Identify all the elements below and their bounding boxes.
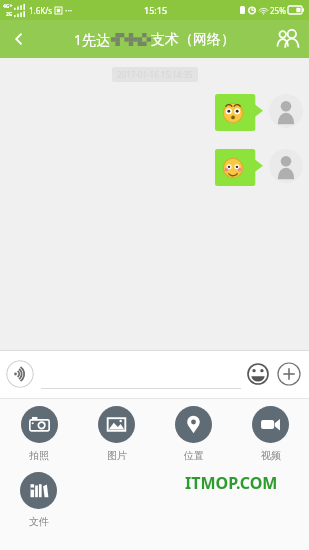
staticText: 视频 <box>261 449 281 462</box>
staticText: 图片 <box>107 449 127 462</box>
staticText: 拍照 <box>29 449 49 462</box>
staticText: 支术（网络） <box>151 31 235 49</box>
button[interactable] <box>215 149 263 186</box>
button[interactable]: More <box>277 362 301 386</box>
staticText: 1.6K/s <box>29 5 53 16</box>
button[interactable]: Back <box>0 20 38 58</box>
staticText: 文件 <box>29 515 49 528</box>
button[interactable]: 图片 <box>78 406 155 462</box>
staticText: 25% <box>270 5 286 16</box>
button[interactable]: 视频 <box>232 406 309 462</box>
button[interactable]: Group members <box>267 20 309 58</box>
button[interactable]: Voice message <box>6 360 34 388</box>
staticText: 2017-01-16 15:14:35 <box>117 69 193 80</box>
button[interactable] <box>41 359 241 389</box>
button[interactable]: Avatar <box>269 149 303 183</box>
staticText: ··· <box>65 4 73 16</box>
button[interactable]: Emoji <box>247 363 269 385</box>
staticText: 1先达 <box>74 30 111 49</box>
staticText: 2G <box>6 11 13 18</box>
button[interactable]: Avatar <box>269 94 303 128</box>
staticText: ITMOP.COM <box>185 472 278 494</box>
staticText: 15:15 <box>144 4 168 16</box>
button[interactable] <box>215 94 263 131</box>
button[interactable]: 拍照 <box>0 406 78 462</box>
staticText: 位置 <box>184 449 204 462</box>
staticText: 4G+ <box>3 3 13 10</box>
button[interactable]: 位置 <box>155 406 232 462</box>
button[interactable]: 文件 <box>0 472 77 528</box>
